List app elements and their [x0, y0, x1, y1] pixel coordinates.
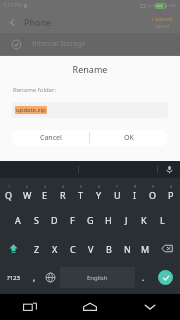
staticText: 9 — [152, 184, 155, 189]
button[interactable]: V — [82, 234, 100, 263]
staticText: 7 — [116, 184, 119, 189]
button[interactable]: . — [136, 263, 151, 292]
staticText: , — [33, 272, 36, 283]
button[interactable]: L — [153, 206, 171, 234]
button[interactable]: 1 selected — [151, 16, 173, 29]
button[interactable]: H — [99, 206, 117, 234]
button[interactable]: English — [60, 267, 135, 288]
staticText: 1 selected — [151, 16, 173, 22]
staticText: W — [23, 189, 32, 201]
staticText: M — [141, 243, 150, 255]
staticText: 3:15 PM — [3, 2, 22, 9]
button[interactable]: Enter — [151, 263, 180, 292]
button[interactable]: X — [46, 234, 64, 263]
button[interactable]: Home — [60, 294, 120, 320]
staticText: O — [149, 189, 157, 201]
button[interactable]: Hide keyboard — [120, 294, 180, 320]
staticText: Y — [96, 189, 102, 201]
button[interactable]: , — [27, 263, 42, 292]
staticText: H — [105, 214, 112, 226]
staticText: E — [42, 189, 48, 201]
staticText: 4G — [148, 3, 154, 8]
button[interactable]: 4 — [54, 178, 72, 206]
staticText: 4 — [62, 184, 65, 189]
button[interactable]: 1 — [0, 178, 18, 206]
staticText: 68% — [169, 3, 177, 8]
staticText: 1 — [8, 184, 11, 189]
button[interactable]: K — [135, 206, 153, 234]
button[interactable]: 5 — [72, 178, 90, 206]
staticText: N — [124, 243, 131, 255]
staticText: G — [87, 214, 94, 226]
button[interactable]: Voice input — [158, 161, 180, 178]
staticText: English — [87, 274, 108, 282]
staticText: T — [78, 189, 84, 201]
button[interactable]: 8 — [126, 178, 144, 206]
staticText: D — [51, 214, 58, 226]
staticText: L — [160, 214, 165, 226]
staticText: 3 — [44, 184, 47, 189]
staticText: R — [60, 189, 66, 201]
staticText: V — [88, 243, 94, 255]
staticText: B — [106, 243, 112, 255]
staticText: S — [34, 214, 39, 226]
button[interactable]: Change language — [42, 263, 59, 292]
button[interactable]: D — [45, 206, 63, 234]
button[interactable]: F — [63, 206, 81, 234]
button[interactable]: A — [9, 206, 27, 234]
staticText: A — [15, 214, 21, 226]
staticText: 0 — [170, 184, 173, 189]
button[interactable]: G — [81, 206, 99, 234]
staticText: P — [168, 189, 174, 201]
button[interactable]: Internal Storage — [0, 33, 180, 55]
button[interactable]: 3 — [36, 178, 54, 206]
button[interactable]: 7 — [108, 178, 126, 206]
button[interactable]: OK — [90, 130, 168, 146]
button[interactable]: B — [100, 234, 118, 263]
button[interactable]: Cancel — [12, 130, 89, 146]
button[interactable]: ?123 — [0, 263, 27, 292]
staticText: Q — [5, 189, 13, 201]
button[interactable]: M — [136, 234, 154, 263]
staticText: F — [70, 214, 75, 226]
button[interactable]: N — [118, 234, 136, 263]
staticText: Rename folder: — [13, 86, 57, 94]
button[interactable]: 9 — [144, 178, 162, 206]
button[interactable]: J — [117, 206, 135, 234]
staticText: I — [133, 189, 137, 201]
staticText: U — [114, 189, 121, 201]
staticText: C — [70, 243, 76, 255]
staticText: OK — [124, 133, 134, 143]
staticText: 8 — [134, 184, 137, 189]
staticText: Phone — [24, 16, 52, 28]
staticText: Cancel — [155, 23, 170, 29]
button[interactable]: Shift — [0, 234, 27, 263]
staticText: X — [52, 243, 58, 255]
button[interactable]: update.zip — [12, 102, 168, 118]
button[interactable]: C — [64, 234, 82, 263]
button[interactable]: Back — [0, 11, 24, 33]
staticText: update.zip — [16, 106, 46, 114]
button[interactable]: Recents — [0, 294, 60, 320]
button[interactable]: S — [27, 206, 45, 234]
button[interactable]: 2 — [18, 178, 36, 206]
staticText: K — [141, 214, 147, 226]
staticText: Z — [34, 243, 40, 255]
staticText: Cancel — [40, 133, 62, 143]
staticText: Rename — [0, 63, 180, 75]
button[interactable]: Z — [27, 234, 46, 263]
staticText: ?123 — [7, 274, 20, 282]
staticText: Internal Storage — [32, 39, 86, 49]
staticText: 2 — [26, 184, 29, 189]
button[interactable]: Backspace — [154, 234, 180, 263]
button[interactable]: 6 — [90, 178, 108, 206]
staticText: J — [125, 214, 128, 226]
staticText: 6 — [98, 184, 101, 189]
staticText: . — [142, 272, 145, 283]
button[interactable]: 0 — [162, 178, 180, 206]
staticText: 5 — [80, 184, 83, 189]
